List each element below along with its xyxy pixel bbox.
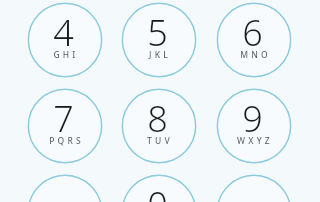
staticText: GHI	[53, 49, 79, 61]
staticText: 0	[147, 180, 168, 202]
staticText: PQRS	[49, 135, 84, 147]
button[interactable]: 0 plus	[121, 174, 197, 202]
staticText: 6	[242, 8, 263, 57]
button[interactable]: 9 W X Y Z	[216, 88, 292, 164]
staticText: WXYZ	[237, 135, 273, 147]
staticText: 8	[147, 94, 168, 143]
button[interactable]: 5 J K L	[121, 2, 197, 78]
staticText: JKL	[149, 49, 171, 61]
staticText: MNO	[240, 49, 271, 61]
button[interactable]: pound	[216, 174, 292, 202]
staticText: 4	[53, 8, 74, 57]
staticText: TUV	[147, 135, 173, 147]
button[interactable]: 4 G H I	[27, 2, 103, 78]
button[interactable]: 6 M N O	[216, 2, 292, 78]
staticText: 7	[53, 94, 74, 143]
staticText: 9	[242, 94, 263, 143]
button[interactable]: 7 P Q R S	[27, 88, 103, 164]
button[interactable]: 8 T U V	[121, 88, 197, 164]
button[interactable]: star	[27, 174, 103, 202]
staticText: 5	[147, 8, 168, 57]
